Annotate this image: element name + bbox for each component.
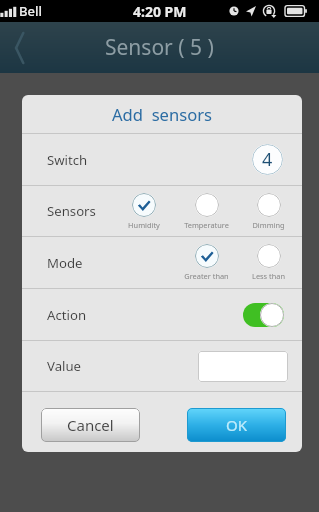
button[interactable]: Less than — [237, 237, 299, 288]
button[interactable]: Greater than — [175, 237, 237, 288]
staticText: Cancel — [67, 415, 114, 435]
staticText: Sensors — [47, 202, 96, 220]
staticText: Humidity — [128, 220, 160, 230]
button[interactable]: OK — [187, 408, 286, 442]
button[interactable]: Cancel — [41, 408, 140, 442]
staticText: 4 — [262, 147, 273, 172]
button[interactable]: Action toggle — [243, 303, 284, 327]
staticText: Sensor ( 5 ) — [105, 33, 214, 62]
staticText: Greater than — [184, 271, 229, 281]
staticText: 4:20 PM — [133, 2, 187, 21]
staticText: Bell — [19, 2, 42, 20]
staticText: Value — [47, 357, 82, 375]
button[interactable]: Humidity — [113, 186, 175, 236]
button[interactable]: Dimming — [237, 186, 299, 236]
button[interactable]: Back — [0, 22, 38, 73]
staticText: Add sensors — [112, 103, 212, 126]
button[interactable]: Switch number 4 — [252, 144, 283, 175]
staticText: Less than — [252, 271, 285, 281]
button[interactable]: Value input — [198, 351, 288, 382]
staticText: Switch — [47, 151, 88, 169]
staticText: OK — [226, 415, 248, 435]
button[interactable]: Temperature — [175, 186, 237, 236]
staticText: Dimming — [252, 220, 285, 230]
staticText: Temperature — [184, 220, 229, 230]
staticText: Mode — [47, 254, 83, 272]
staticText: Action — [47, 306, 87, 324]
